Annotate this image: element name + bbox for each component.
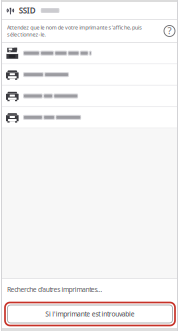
button[interactable]: Si l'imprimante est introuvable [0,300,180,328]
staticText: Si l'imprimante est introuvable [45,310,135,318]
staticText: Attendez que le nom de votre imprimante … [7,24,142,38]
button[interactable] [0,43,180,64]
staticText: ? [167,24,171,37]
staticText: Recherche d'autres imprimantes… [7,285,102,294]
button[interactable]: Aide [163,24,176,37]
staticText: SSID [19,5,36,16]
button[interactable] [0,107,180,129]
button[interactable] [0,64,180,86]
button[interactable] [0,86,180,107]
